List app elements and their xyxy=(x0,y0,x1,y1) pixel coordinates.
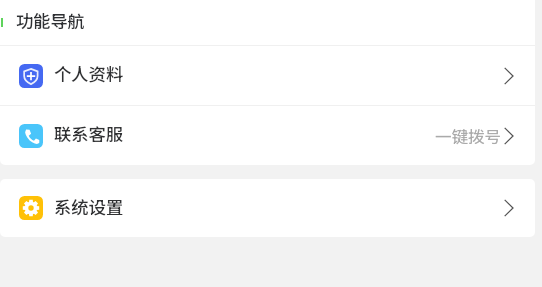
staticText: 联系客服 xyxy=(54,121,124,146)
button[interactable]: 联系客服 xyxy=(0,106,535,165)
staticText: 一键拨号 xyxy=(435,124,501,148)
staticText: 个人资料 xyxy=(54,61,124,86)
other: 打开 系统设置 xyxy=(504,199,514,217)
staticText: 功能导航 xyxy=(16,8,85,33)
staticText: 系统设置 xyxy=(54,194,124,219)
other: 打开 联系客服 xyxy=(504,127,514,145)
button[interactable]: 个人资料 xyxy=(0,46,535,105)
other: 打开 个人资料 xyxy=(504,67,514,85)
button[interactable]: 系统设置 xyxy=(0,179,535,237)
